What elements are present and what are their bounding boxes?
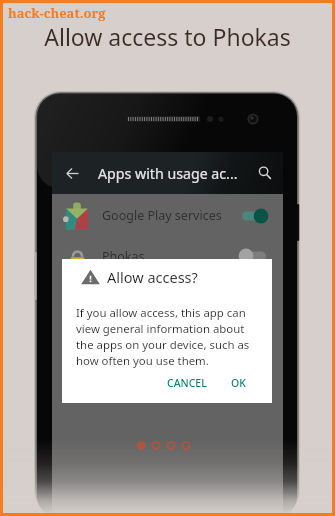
staticText: view general information about [76,321,245,337]
staticText: If you allow access, this app can [76,305,246,321]
button[interactable]: Back [58,159,86,187]
staticText: the apps on your device, such as [76,337,250,353]
button[interactable]: CANCEL [159,369,215,397]
button[interactable]: Phokas [52,237,283,275]
staticText: Apps with usage ac... [98,164,238,183]
staticText: hack-cheat.org [8,4,106,22]
button[interactable]: Search [251,159,279,187]
staticText: CANCEL [167,376,207,390]
button[interactable]: OK [223,369,254,397]
button[interactable]: Google Play services [52,194,283,237]
button[interactable]: Toggle Google Play services [240,204,270,228]
staticText: Google Play services [102,207,222,224]
staticText: Phokas [102,248,145,265]
staticText: how often you use them. [76,353,209,369]
button[interactable]: Toggle Phokas [240,244,270,268]
staticText: Allow access? [107,267,198,287]
staticText: Allow access to Phokas [0,21,335,52]
staticText: OK [231,376,246,390]
